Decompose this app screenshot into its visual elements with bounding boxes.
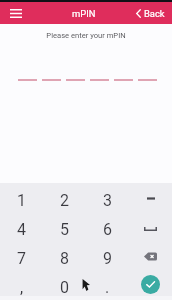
button[interactable]: 6 [86,213,129,242]
button[interactable]: 0 [43,271,86,300]
button[interactable] [129,242,172,271]
button[interactable] [129,213,172,242]
button[interactable]: Confirm [129,271,172,300]
staticText: mPIN [72,8,96,19]
button[interactable]: Back [136,2,165,24]
staticText: 6 [103,220,112,239]
staticText: 7 [17,249,26,268]
staticText: , [20,278,24,297]
staticText: Please enter your mPIN [0,31,172,40]
button[interactable] [129,183,172,213]
staticText: 2 [60,191,69,210]
button[interactable]: Menu [0,2,31,24]
button[interactable]: 9 [86,242,129,271]
button[interactable]: 3 [86,183,129,213]
button[interactable]: 5 [43,213,86,242]
button[interactable]: 2 [43,183,86,213]
button[interactable]: 1 [0,183,43,213]
staticText: 9 [103,249,112,268]
staticText: 8 [60,249,69,268]
button[interactable]: . [86,271,129,300]
staticText: Back [144,8,165,19]
staticText: 1 [17,191,26,210]
staticText: 5 [60,220,69,239]
button[interactable]: 7 [0,242,43,271]
button[interactable]: , [0,271,43,300]
staticText: . [105,278,110,297]
staticText: 4 [17,220,26,239]
other: Confirm [141,275,160,294]
button[interactable]: 8 [43,242,86,271]
button[interactable]: 4 [0,213,43,242]
staticText: 3 [103,191,112,210]
staticText: 0 [60,278,69,297]
